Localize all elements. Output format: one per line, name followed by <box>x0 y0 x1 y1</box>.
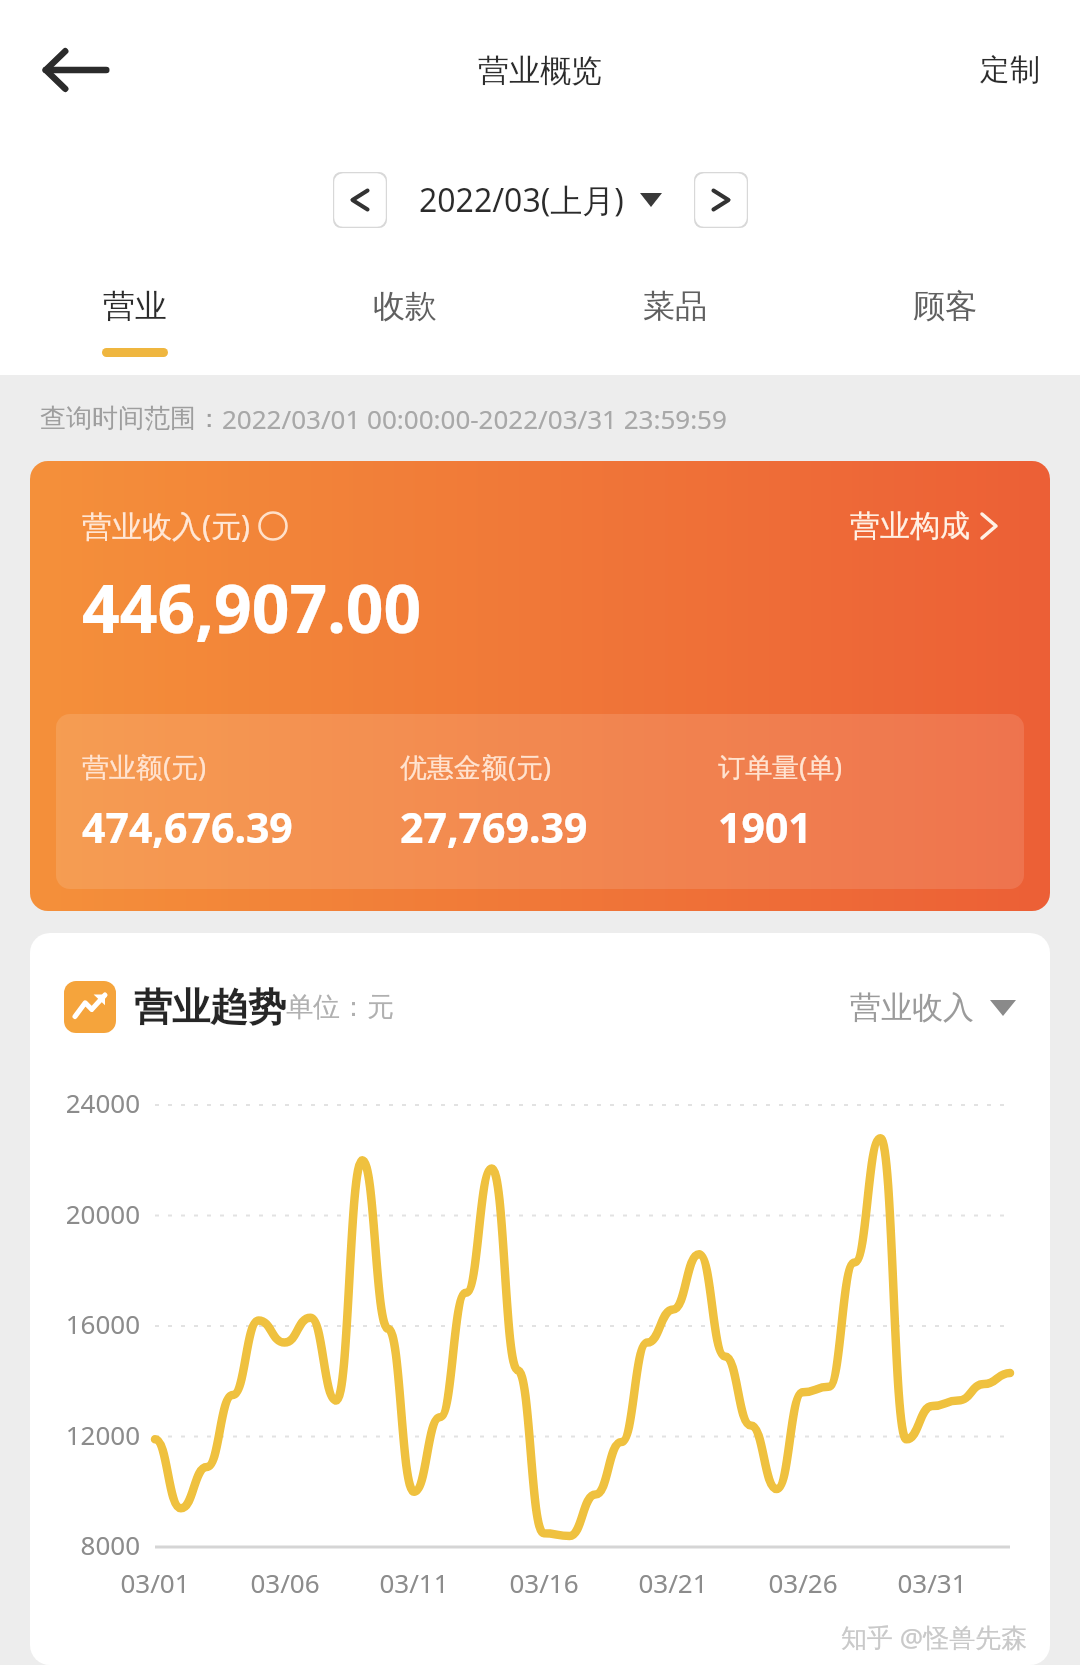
button[interactable]: 定制 <box>980 51 1040 89</box>
staticText: 03/01 <box>100 1565 210 1600</box>
button[interactable]: Back <box>40 34 112 106</box>
staticText: 知乎 @怪兽先森 <box>841 1619 1028 1655</box>
staticText: 菜品 <box>643 286 707 326</box>
staticText: 单位：元 <box>286 990 394 1024</box>
staticText: 474,676.39 <box>82 799 293 855</box>
staticText: 03/26 <box>748 1565 858 1600</box>
button[interactable]: Next month <box>694 172 748 228</box>
staticText: 12000 <box>30 1417 140 1452</box>
button[interactable]: 2022/03(上月) <box>419 178 662 222</box>
button[interactable]: 菜品 <box>540 260 810 375</box>
staticText: 1901 <box>718 799 812 855</box>
button[interactable]: 收款 <box>270 260 540 375</box>
staticText: 营业概览 <box>478 51 602 90</box>
staticText: 24000 <box>30 1085 140 1120</box>
staticText: 16000 <box>30 1306 140 1341</box>
staticText: 营业额(元) <box>82 748 207 785</box>
staticText: 8000 <box>30 1527 140 1562</box>
button[interactable]: 顾客 <box>810 260 1080 375</box>
staticText: 订单量(单) <box>718 748 843 785</box>
staticText: 2022/03(上月) <box>419 178 624 222</box>
staticText: 定制 <box>980 51 1040 89</box>
button[interactable]: Previous month <box>333 172 387 228</box>
staticText: 营业收入 <box>850 988 974 1027</box>
staticText: 20000 <box>30 1196 140 1231</box>
button[interactable]: 营业收入(元) <box>30 461 1050 911</box>
staticText: 查询时间范围： <box>40 402 222 435</box>
staticText: 446,907.00 <box>82 562 422 652</box>
button[interactable]: 营业构成 <box>850 507 998 545</box>
staticText: 2022/03/01 00:00:00-2022/03/31 23:59:59 <box>222 401 727 436</box>
staticText: 03/21 <box>618 1565 728 1600</box>
staticText: 03/16 <box>489 1565 599 1600</box>
staticText: 营业 <box>103 286 167 326</box>
staticText: 03/06 <box>230 1565 340 1600</box>
staticText: 03/31 <box>877 1565 987 1600</box>
staticText: 营业收入(元) <box>82 505 250 546</box>
staticText: 营业趋势 <box>134 983 286 1031</box>
staticText: 27,769.39 <box>400 799 588 855</box>
staticText: 03/11 <box>359 1565 469 1600</box>
staticText: 顾客 <box>913 286 977 326</box>
button[interactable]: 营业收入 <box>850 988 1016 1027</box>
button[interactable]: 营业 <box>0 260 270 375</box>
staticText: 收款 <box>373 286 437 326</box>
staticText: 营业构成 <box>850 507 970 545</box>
staticText: 优惠金额(元) <box>400 748 552 785</box>
